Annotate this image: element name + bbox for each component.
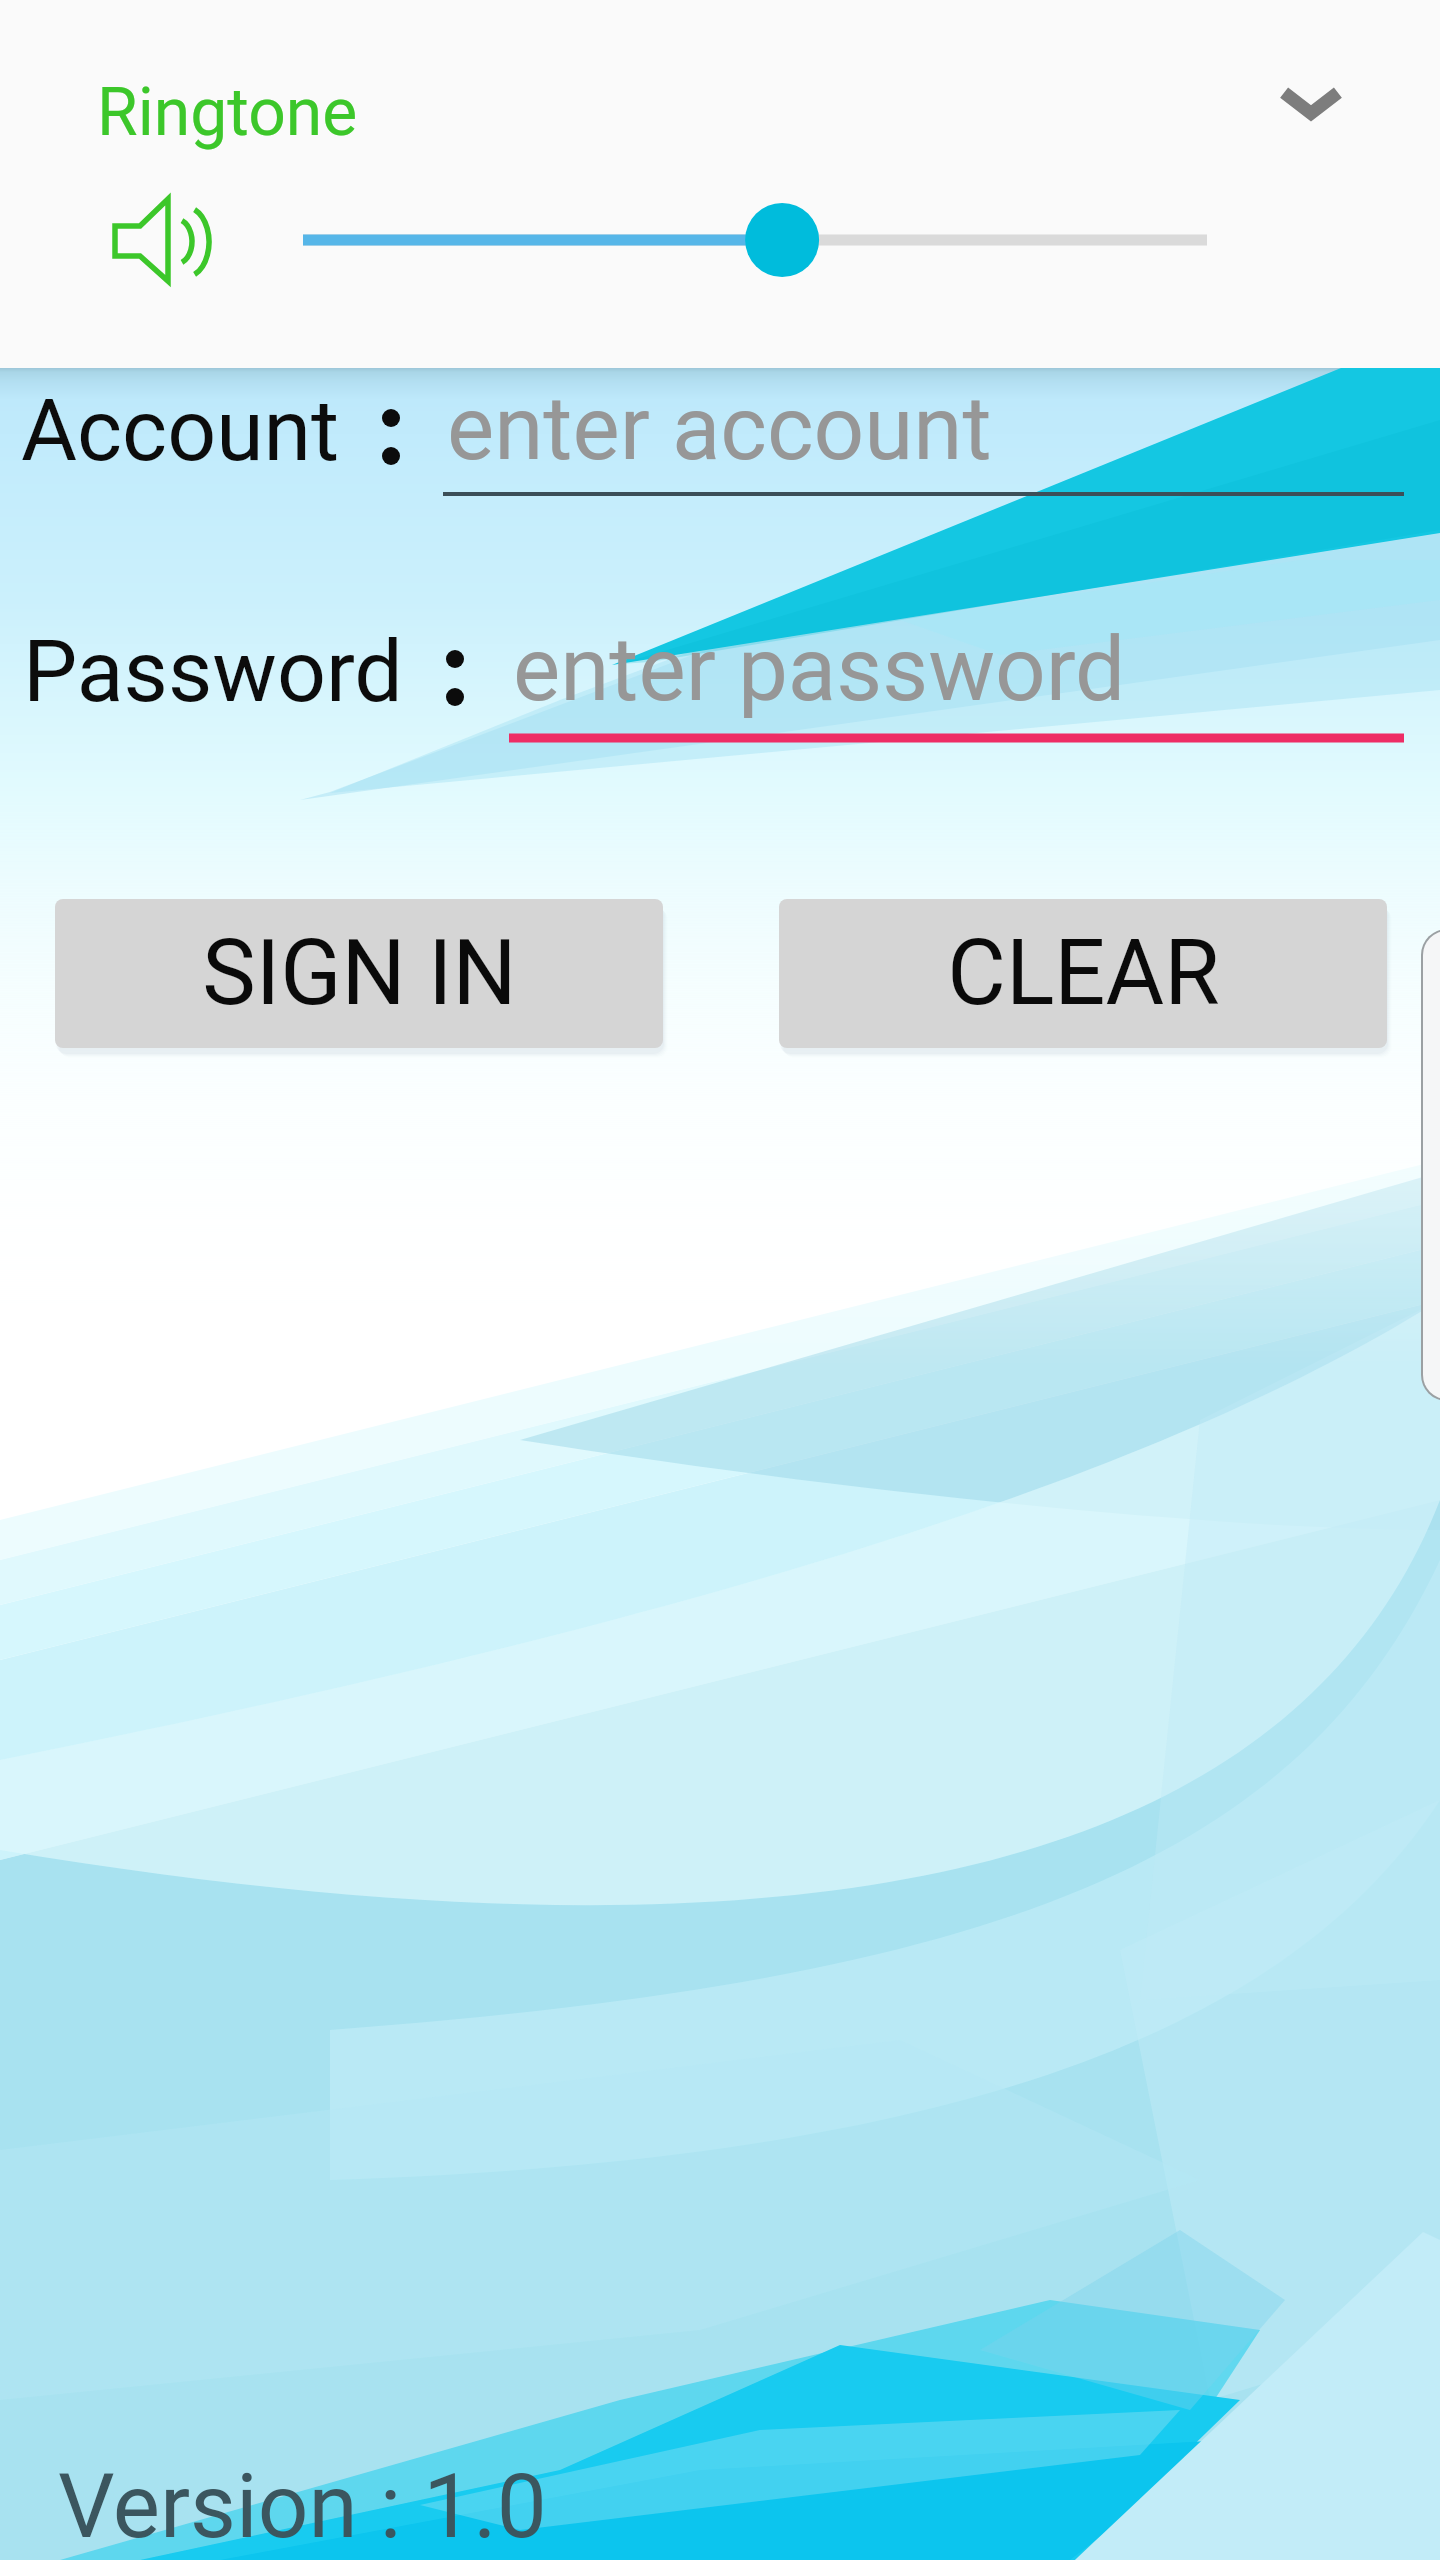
staticText: enter account <box>447 376 992 480</box>
staticText: SIGN IN <box>202 921 517 1026</box>
button[interactable]: CLEAR <box>779 899 1387 1048</box>
staticText: Password <box>23 621 403 722</box>
staticText: enter password <box>513 617 1126 721</box>
button[interactable]: enter account <box>443 380 1404 496</box>
button[interactable]: enter password <box>509 621 1404 743</box>
button[interactable]: Collapse volume panel <box>1246 38 1376 168</box>
staticText: Account <box>21 380 340 481</box>
staticText: Version : 1.0 <box>58 2454 547 2558</box>
staticText: Ringtone <box>97 74 358 151</box>
button[interactable]: SIGN IN <box>55 899 663 1048</box>
staticText: CLEAR <box>947 921 1220 1026</box>
